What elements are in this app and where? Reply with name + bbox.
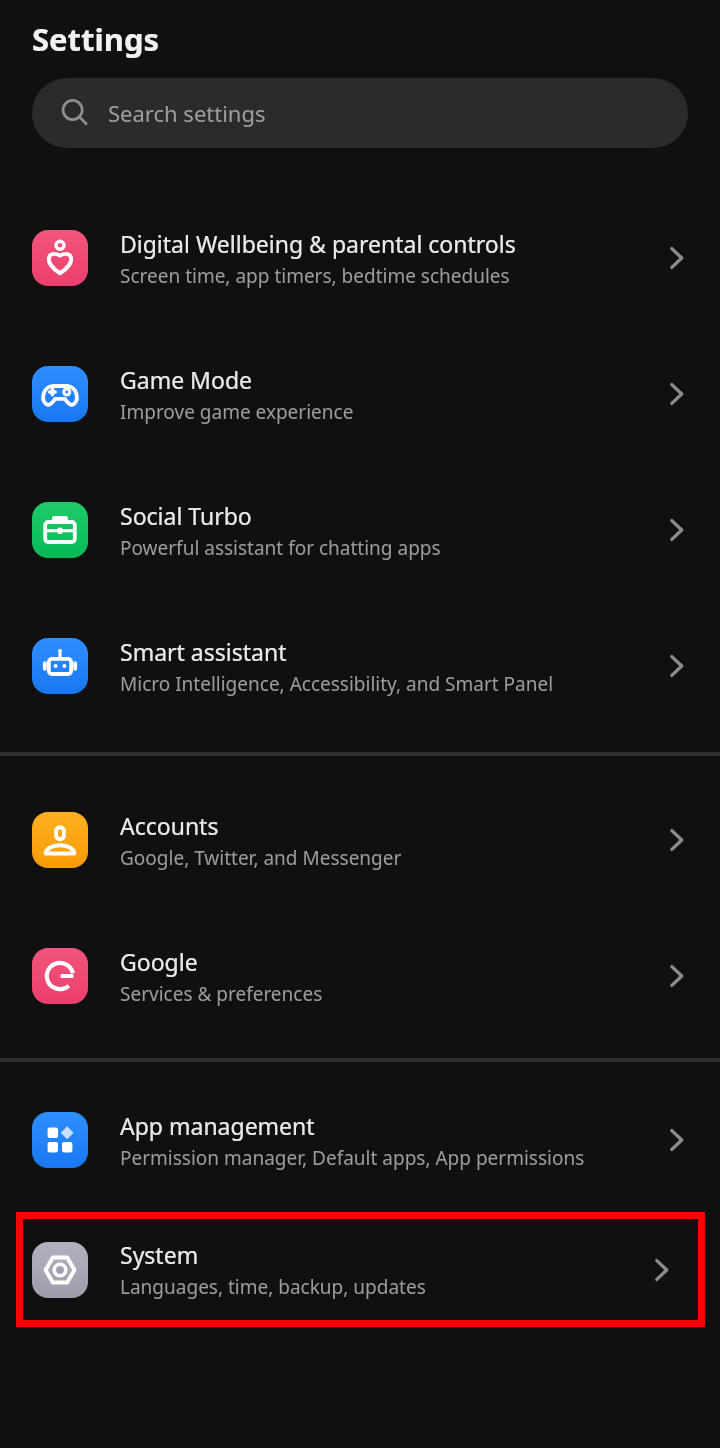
staticText: Google [120, 946, 198, 977]
staticText: Digital Wellbeing & parental controls [120, 228, 516, 259]
staticText: Smart assistant [120, 636, 287, 667]
staticText: Accounts [120, 810, 219, 841]
staticText: Languages, time, backup, updates [120, 1274, 426, 1300]
button[interactable]: App management [0, 1072, 720, 1208]
staticText: Social Turbo [120, 500, 252, 531]
staticText: Improve game experience [120, 399, 354, 425]
staticText: System [120, 1239, 199, 1270]
staticText: Search settings [108, 98, 266, 128]
staticText: Game Mode [120, 364, 252, 395]
button[interactable]: Accounts [0, 772, 720, 908]
staticText: App management [120, 1110, 315, 1141]
button[interactable]: Social Turbo [0, 462, 720, 598]
staticText: Settings [32, 18, 160, 60]
button[interactable]: System [16, 1212, 705, 1327]
button[interactable]: Digital Wellbeing & parental controls [0, 190, 720, 326]
staticText: Screen time, app timers, bedtime schedul… [120, 263, 510, 289]
staticText: Micro Intelligence, Accessibility, and S… [120, 671, 554, 697]
button[interactable]: Smart assistant [0, 598, 720, 734]
button[interactable]: Game Mode [0, 326, 720, 462]
staticText: Permission manager, Default apps, App pe… [120, 1145, 585, 1171]
staticText: Google, Twitter, and Messenger [120, 845, 402, 871]
button[interactable]: Search settings [32, 78, 688, 148]
staticText: Powerful assistant for chatting apps [120, 535, 441, 561]
button[interactable]: Google [0, 908, 720, 1044]
staticText: Services & preferences [120, 981, 323, 1007]
